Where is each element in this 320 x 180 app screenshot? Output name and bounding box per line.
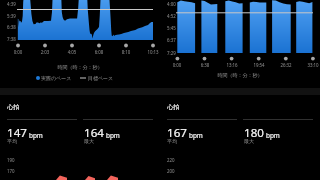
button[interactable]: 164 <box>84 125 120 141</box>
staticText: 33:10 <box>302 62 320 68</box>
staticText: 0:00 <box>7 49 29 55</box>
staticText: 心拍 <box>7 103 20 111</box>
staticText: 167 <box>167 125 187 141</box>
staticText: bpm <box>29 131 43 140</box>
staticText: 平均 <box>167 138 177 144</box>
staticText: 4:05 <box>61 49 83 55</box>
staticText: bpm <box>266 131 280 140</box>
staticText: 19:54 <box>248 62 270 68</box>
staticText: 5:45 <box>167 25 176 31</box>
staticText: 7:29 <box>167 50 176 56</box>
button[interactable]: 147 <box>7 125 43 141</box>
staticText: 5:39 <box>7 13 16 19</box>
staticText: 6:38 <box>194 62 216 68</box>
staticText: 190 <box>7 157 15 163</box>
staticText: 最大 <box>84 138 94 144</box>
staticText: 6:38 <box>7 24 16 30</box>
staticText: 6:08 <box>88 49 110 55</box>
staticText: 時間（時：分：秒） <box>160 72 320 78</box>
staticText: 最大 <box>244 138 254 144</box>
staticText: 180 <box>244 125 264 141</box>
staticText: 200 <box>167 168 175 174</box>
staticText: 実際のペース <box>41 75 72 81</box>
staticText: 26:32 <box>275 62 297 68</box>
staticText: 147 <box>7 125 27 141</box>
staticText: 164 <box>84 125 104 141</box>
staticText: 170 <box>7 168 15 174</box>
staticText: 時間（時：分：秒） <box>0 64 160 70</box>
staticText: 220 <box>167 157 175 163</box>
staticText: 4:00 <box>167 1 176 7</box>
staticText: 13:16 <box>221 62 243 68</box>
staticText: 平均 <box>7 138 17 144</box>
button[interactable]: 180 <box>244 125 280 141</box>
staticText: 10:13 <box>142 49 164 55</box>
staticText: 目標ペース <box>88 75 114 81</box>
button[interactable]: 167 <box>167 125 203 141</box>
staticText: 7:38 <box>7 36 16 42</box>
button[interactable]: 実際のペース <box>36 75 114 81</box>
staticText: 6:37 <box>167 37 176 43</box>
staticText: 心拍 <box>167 103 180 111</box>
staticText: bpm <box>106 131 120 140</box>
staticText: bpm <box>189 131 203 140</box>
staticText: 0:00 <box>166 62 188 68</box>
staticText: 2:03 <box>34 49 56 55</box>
staticText: 4:39 <box>7 1 16 7</box>
staticText: 8:10 <box>115 49 137 55</box>
staticText: 4:52 <box>167 13 176 19</box>
